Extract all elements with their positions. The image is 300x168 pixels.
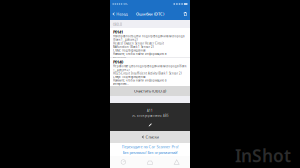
staticText: Интернете... — [113, 56, 129, 59]
staticText: 1, датчик 2) — [113, 68, 130, 72]
staticText: Интернете... — [113, 82, 129, 86]
staticText: Heated Oxygen Sensor Heater Circuit — [113, 42, 164, 45]
button[interactable]: P0140 — [110, 58, 190, 86]
staticText: Не работает цепь подогрева датчика кисло… — [113, 64, 186, 68]
button[interactable]: P0141 — [110, 28, 190, 58]
staticText: P0140 — [113, 59, 123, 64]
button[interactable]: Приборы — [110, 156, 137, 168]
staticText: Списки — [146, 134, 159, 140]
staticText: МТС — [123, 2, 128, 6]
staticText: A11 — [147, 109, 153, 112]
staticText: ЭС Блок управления ABS — [132, 114, 168, 117]
staticText: Очистить (OBD-II) — [134, 88, 166, 94]
staticText: InShot — [235, 144, 291, 167]
button[interactable]: Удалить ошибки — [181, 8, 190, 19]
staticText: (банк 1, датчик 2) — [113, 38, 138, 42]
staticText: Malfunction (Bank 1 Sensor 2) — [113, 45, 154, 49]
staticText: P0141 — [113, 29, 123, 34]
staticText: Назад — [116, 11, 127, 17]
staticText: OBD-II — [113, 23, 122, 26]
button[interactable]: Подключение — [137, 156, 163, 168]
staticText: HO2S Circuit Insufficient Activity (Bank… — [113, 72, 182, 75]
button[interactable]: Переходите на Car Scanner Pro! — [110, 143, 190, 156]
button[interactable]: Назад — [110, 8, 129, 19]
staticText: Без рекламы! Без ограничений! — [122, 150, 177, 155]
staticText: Статус: Подтверждённая — [113, 75, 146, 79]
button[interactable]: Очистить (OBD-II) — [110, 86, 190, 96]
staticText: Статус: Подтверждённая — [113, 49, 146, 52]
staticText: Нажмите, чтобы найти информацию в — [113, 52, 167, 56]
staticText: Нажмите, чтобы найти информацию в — [113, 79, 167, 82]
staticText: Переходите на Car Scanner Pro! — [121, 144, 178, 149]
staticText: Неисправность цепи подогрева датчика кис… — [113, 34, 184, 38]
button[interactable]: Изменить — [145, 121, 154, 128]
staticText: Ошибки (DTC) — [136, 11, 164, 17]
button[interactable]: Списки — [110, 131, 190, 143]
button[interactable]: Ошибки — [163, 156, 190, 168]
